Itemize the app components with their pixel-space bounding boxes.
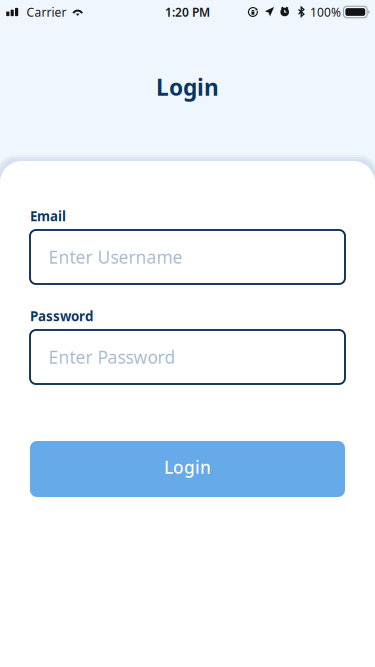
button[interactable]: Enter Username: [30, 230, 345, 284]
staticText: Login: [156, 72, 219, 102]
staticText: Email: [30, 207, 66, 225]
staticText: Login: [164, 455, 211, 478]
staticText: Carrier: [26, 4, 66, 20]
staticText: Enter Password: [48, 345, 175, 368]
button[interactable]: Login: [30, 441, 345, 497]
staticText: 1:20 PM: [165, 4, 210, 20]
button[interactable]: Enter Password: [30, 330, 345, 384]
staticText: Enter Username: [48, 245, 182, 268]
staticText: 100%: [310, 4, 341, 20]
staticText: Password: [30, 307, 93, 325]
